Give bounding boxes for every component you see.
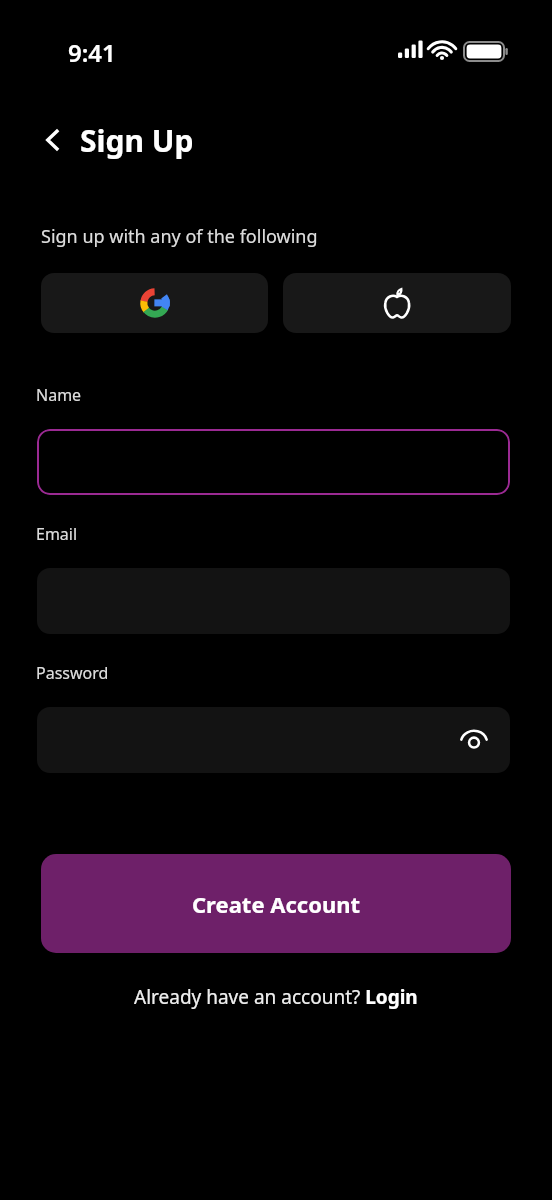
staticText: Email: [36, 523, 78, 545]
staticText: Create Account: [192, 889, 361, 919]
button[interactable]: Sign up with Apple: [283, 273, 511, 333]
button[interactable]: Create Account: [41, 854, 511, 953]
staticText: Sign up with any of the following: [41, 224, 318, 249]
staticText: Name: [36, 384, 82, 406]
button[interactable]: Already have an account? Login: [126, 978, 426, 1016]
staticText: Password: [36, 662, 109, 684]
staticText: 9:41: [68, 36, 116, 69]
button[interactable]: Back: [36, 123, 70, 157]
button[interactable]: Sign up with Google: [41, 273, 268, 333]
button[interactable]: Show password: [37, 707, 510, 773]
button[interactable]: Show password: [454, 720, 494, 760]
button[interactable]: [37, 429, 510, 495]
staticText: Sign Up: [80, 120, 194, 161]
staticText: Already have an account? Login: [134, 984, 418, 1010]
